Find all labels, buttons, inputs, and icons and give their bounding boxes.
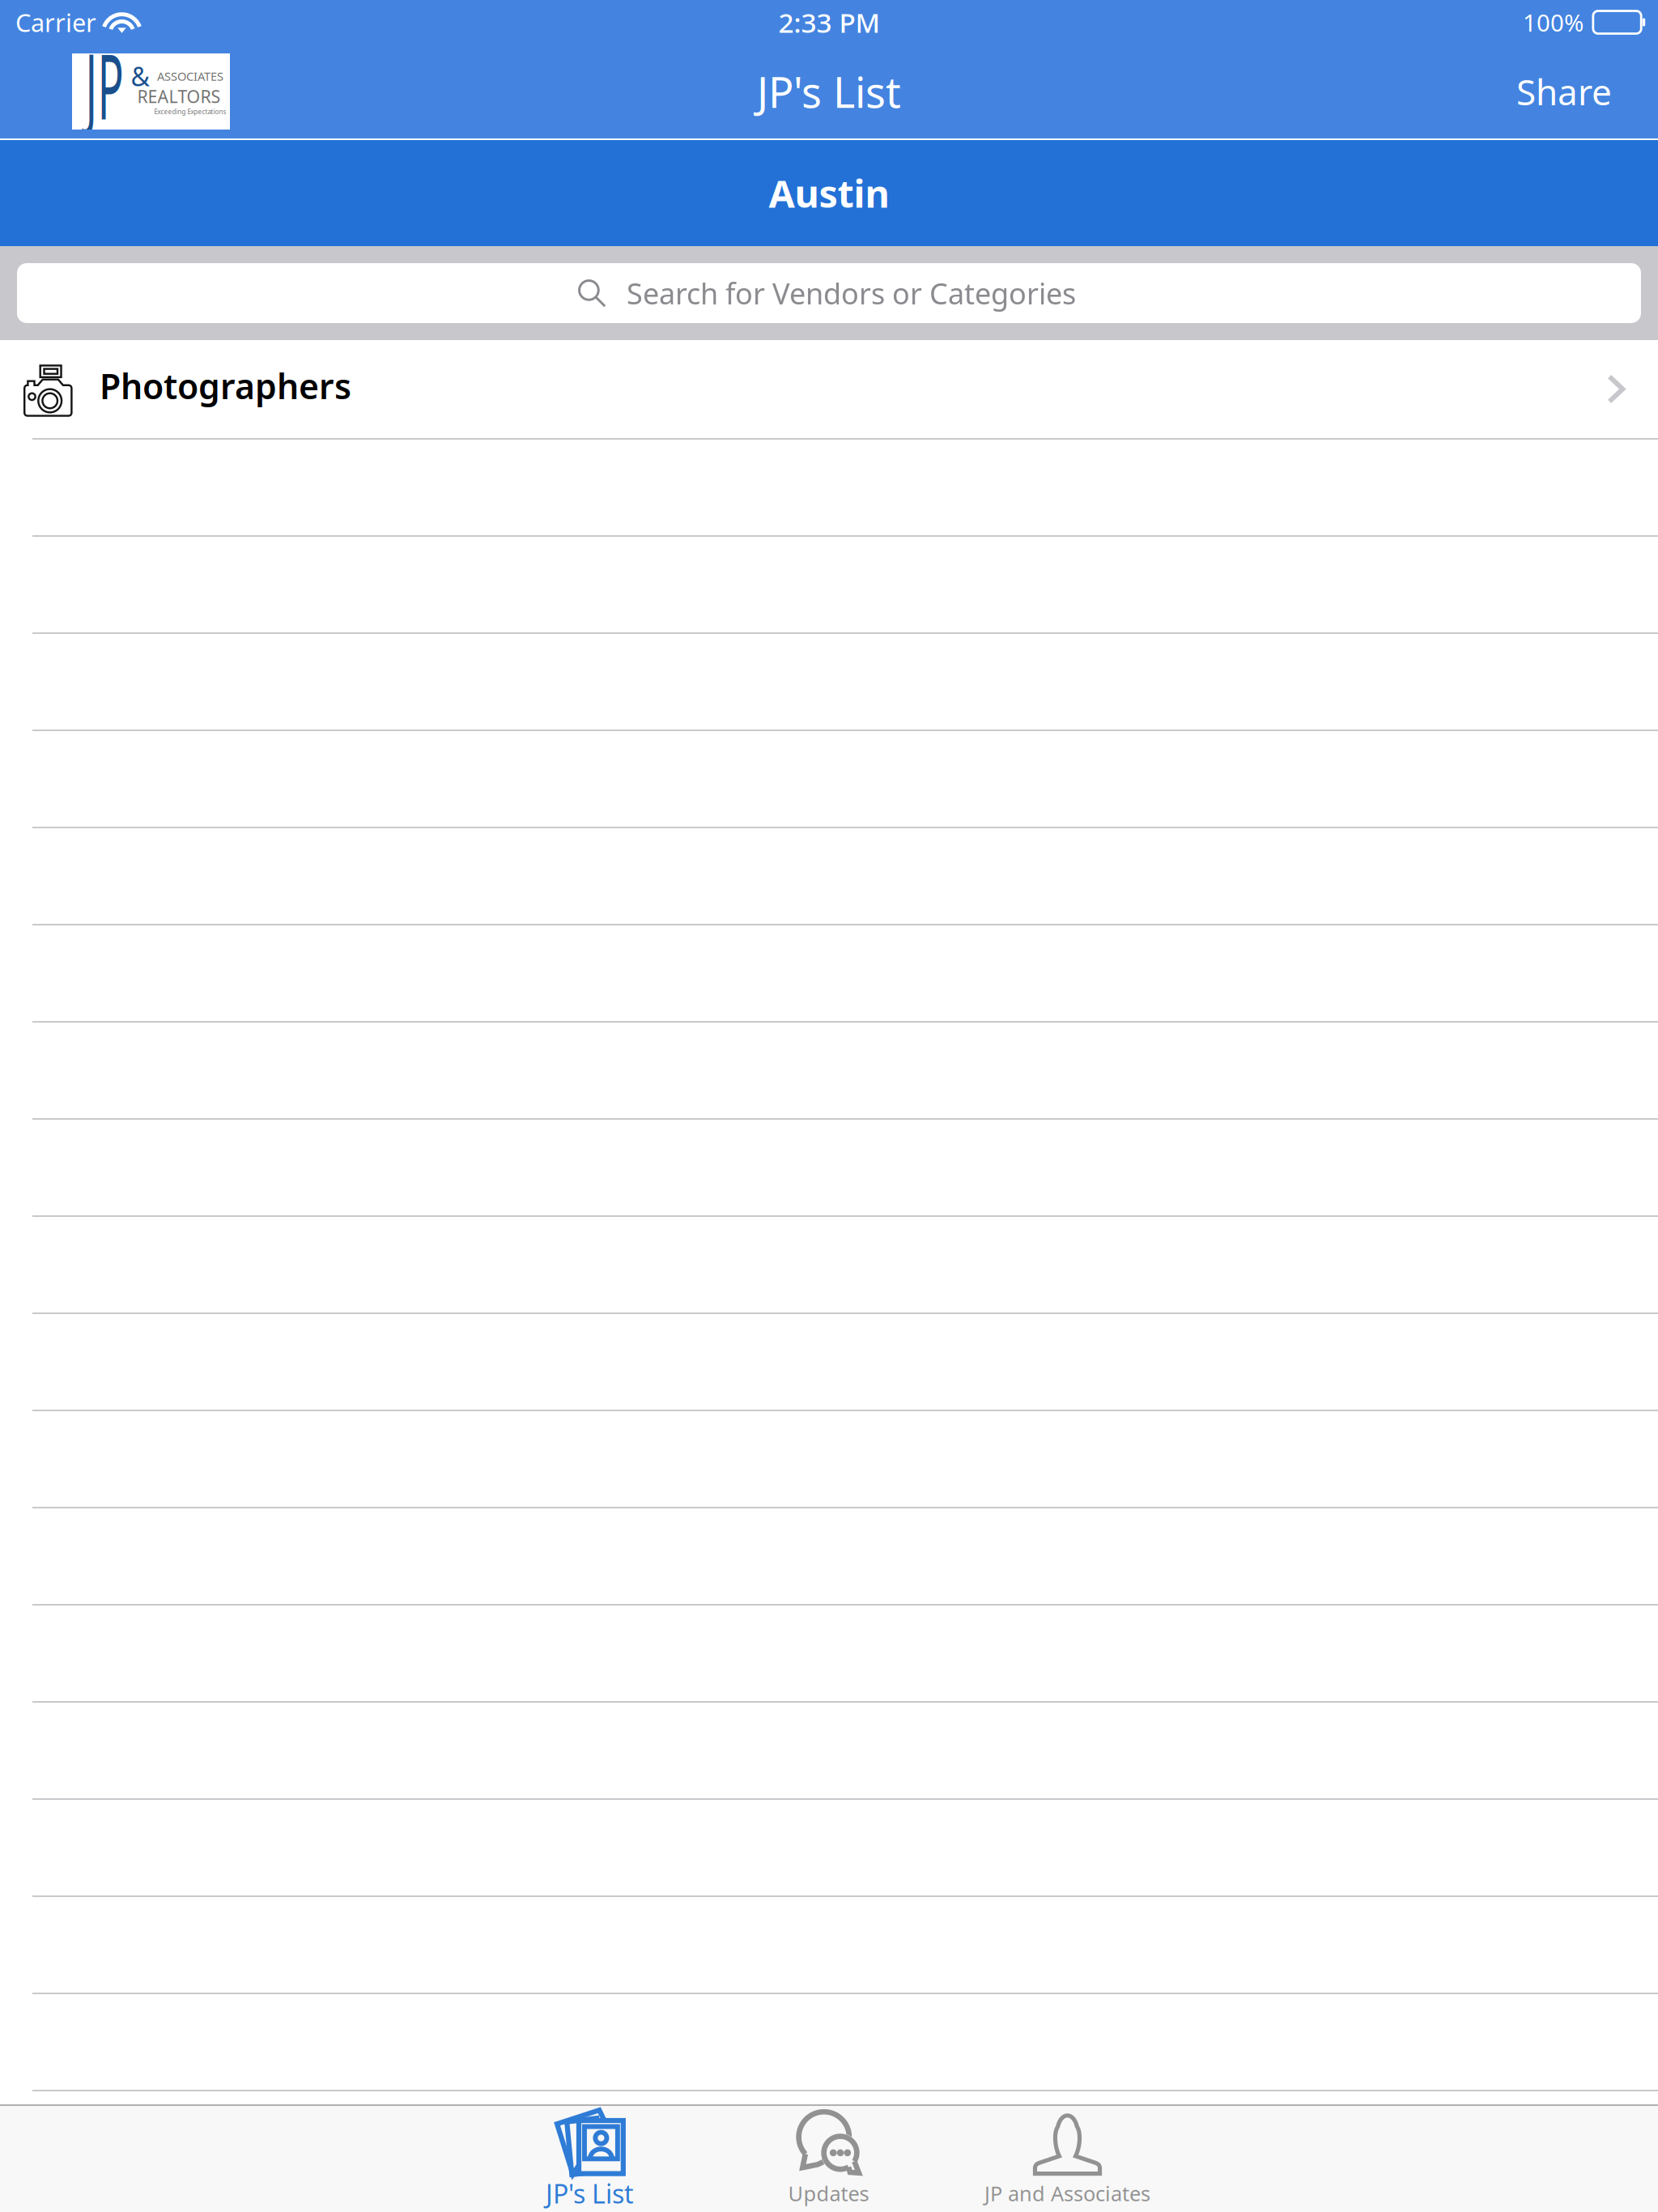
- staticText: 100%: [1523, 6, 1584, 38]
- staticText: JP and Associates: [984, 2180, 1150, 2207]
- staticText: JP's List: [546, 2176, 634, 2211]
- button[interactable]: Updates: [710, 2106, 948, 2212]
- staticText: Photographers: [100, 363, 351, 409]
- staticText: Carrier: [15, 6, 96, 39]
- button[interactable]: JP's List: [471, 2106, 710, 2212]
- button[interactable]: Share: [1503, 55, 1625, 128]
- staticText: REALTORS: [137, 85, 221, 108]
- staticText: JP: [85, 56, 123, 113]
- button[interactable]: Photographers: [0, 340, 1658, 438]
- button[interactable]: Search for Vendors or Categories: [17, 263, 1641, 323]
- staticText: Search for Vendors or Categories: [627, 274, 1076, 312]
- button[interactable]: JP and Associates: [948, 2106, 1187, 2212]
- button[interactable]: JP and Associates Realtors: [72, 53, 230, 130]
- staticText: &: [131, 59, 149, 93]
- staticText: JP's List: [757, 64, 901, 120]
- staticText: 2:33 PM: [778, 4, 880, 40]
- staticText: ASSOCIATES: [157, 68, 223, 84]
- staticText: Exceeding Expectations: [154, 107, 226, 116]
- staticText: Updates: [788, 2180, 869, 2207]
- staticText: Share: [1516, 68, 1612, 115]
- staticText: Austin: [769, 168, 889, 218]
